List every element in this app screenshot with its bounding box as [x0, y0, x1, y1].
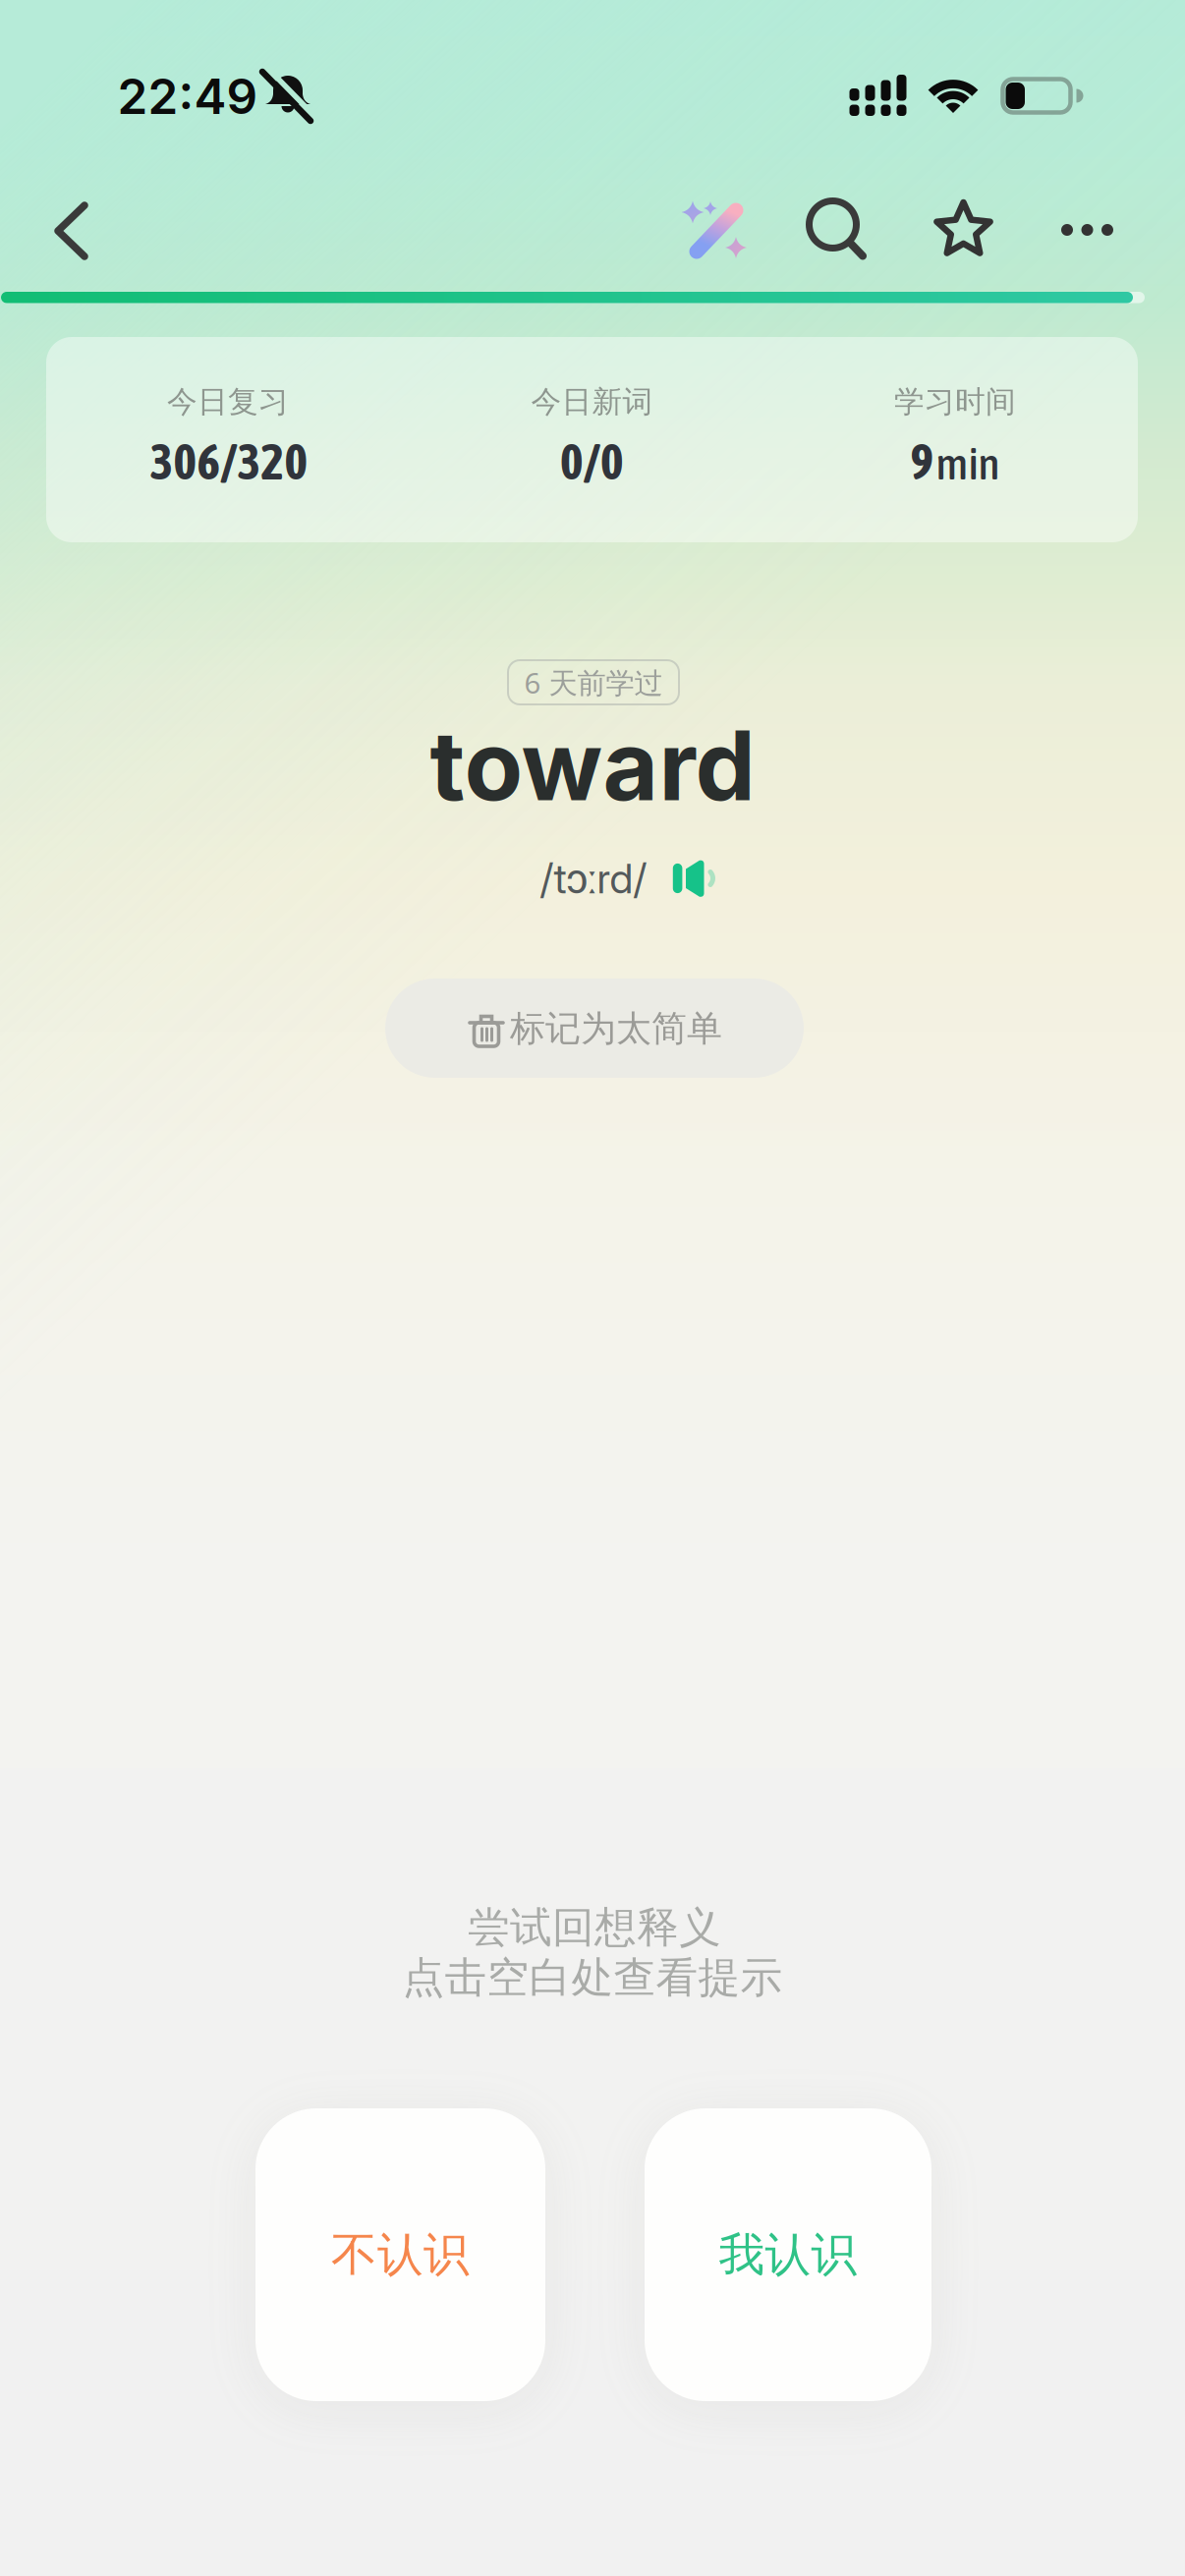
button[interactable]: Search [792, 185, 880, 273]
button[interactable]: 不认识 [255, 2108, 545, 2401]
button[interactable]: Favorite [919, 185, 1007, 273]
button[interactable]: AI assistant [673, 186, 762, 274]
staticText: 标记为太简单 [510, 1007, 722, 1050]
staticText: 9 [910, 434, 934, 490]
staticText: 今日复习 [167, 383, 289, 420]
staticText: 306/320 [150, 434, 308, 490]
staticText: 我认识 [719, 2227, 857, 2283]
staticText: 0/0 [560, 434, 624, 490]
button[interactable]: 标记为太简单 [385, 979, 804, 1078]
staticText: /tɔːrd/ [540, 853, 647, 903]
button[interactable]: More [1043, 186, 1131, 274]
staticText: 6 天前学过 [524, 663, 663, 701]
button[interactable]: Back [27, 187, 115, 275]
staticText: 22:49 [117, 67, 258, 126]
staticText: 点击空白处查看提示 [402, 1952, 783, 2003]
staticText: 不认识 [331, 2227, 470, 2283]
staticText: min [936, 438, 1000, 489]
button[interactable]: Play pronunciation [665, 851, 720, 906]
staticText: 今日新词 [531, 383, 653, 420]
staticText: 尝试回想释义 [468, 1902, 721, 1953]
staticText: toward [430, 707, 755, 823]
button[interactable]: 我认识 [645, 2108, 931, 2401]
staticText: 学习时间 [894, 383, 1016, 420]
